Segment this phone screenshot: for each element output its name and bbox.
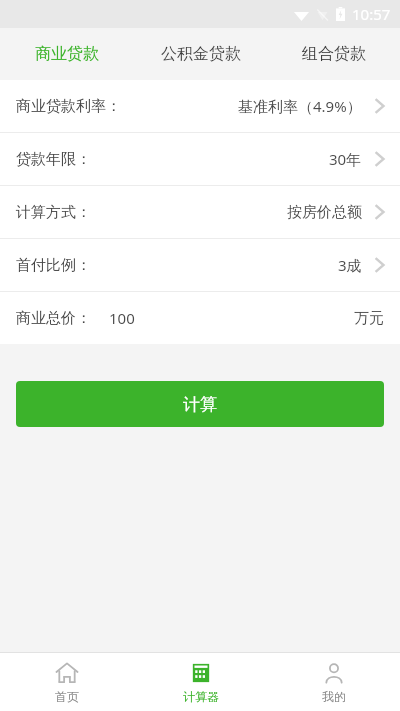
button[interactable]: 首页 [0, 653, 134, 711]
button[interactable]: 我的 [267, 653, 400, 711]
staticText: 贷款年限： [16, 150, 91, 169]
button[interactable]: 计算器 [134, 653, 267, 711]
staticText: 组合贷款 [302, 44, 366, 64]
staticText: 计算方式： [16, 203, 91, 222]
staticText: 首页 [55, 689, 79, 704]
button[interactable]: 公积金贷款 [134, 28, 267, 80]
staticText: 30年 [329, 149, 362, 169]
staticText: 100 [109, 308, 135, 328]
staticText: 商业贷款利率： [16, 97, 121, 116]
button[interactable]: 商业贷款 [0, 28, 134, 80]
staticText: 我的 [322, 689, 346, 704]
staticText: 按房价总额 [287, 203, 362, 222]
staticText: 商业贷款 [35, 44, 99, 64]
staticText: 计算 [183, 394, 217, 415]
button[interactable]: 计算 [16, 381, 384, 427]
button[interactable]: 商业贷款利率： [0, 80, 400, 132]
button[interactable]: 首付比例： [0, 239, 400, 291]
staticText: 10:57 [352, 4, 391, 24]
staticText: 3成 [338, 255, 362, 275]
staticText: 万元 [354, 309, 384, 328]
staticText: 基准利率（4.9%） [238, 96, 362, 116]
staticText: 公积金贷款 [161, 44, 241, 64]
staticText: 计算器 [183, 689, 219, 704]
button[interactable]: 组合贷款 [267, 28, 400, 80]
button[interactable]: 计算方式： [0, 186, 400, 238]
button[interactable]: 商业总价： [0, 292, 400, 344]
staticText: 商业总价： [16, 309, 91, 328]
button[interactable]: 贷款年限： [0, 133, 400, 185]
staticText: 首付比例： [16, 256, 91, 275]
